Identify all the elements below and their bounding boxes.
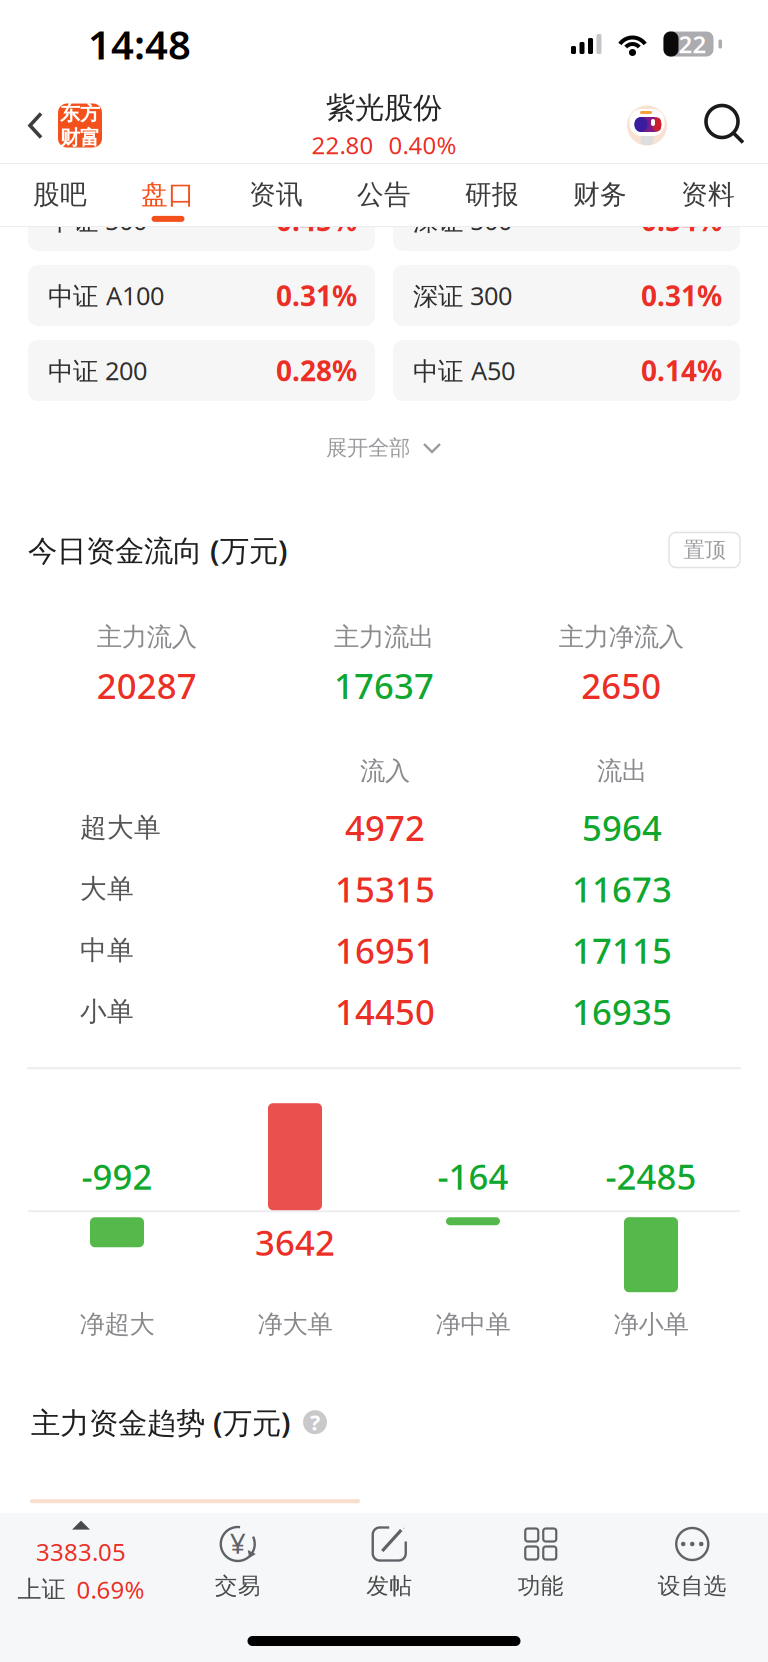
staticText: 小单: [80, 995, 134, 1028]
staticText: 净小单: [613, 1309, 688, 1340]
staticText: 主力净流入: [559, 621, 684, 652]
staticText: 中证 500: [48, 204, 147, 237]
button[interactable]: 搜索: [698, 97, 754, 153]
staticText: 主力流出: [334, 621, 434, 652]
staticText: 15315: [335, 866, 435, 912]
button[interactable]: 设自选: [616, 1513, 768, 1613]
staticText: 资料: [681, 178, 735, 211]
button[interactable]: 中证 500: [28, 190, 375, 251]
staticText: 股吧: [33, 178, 87, 211]
staticText: 展开全部: [326, 435, 410, 461]
staticText: 深证 500: [413, 204, 512, 237]
staticText: 今日资金流向 (万元): [28, 530, 288, 569]
staticText: 东方: [60, 101, 100, 125]
staticText: 财务: [573, 178, 627, 211]
button[interactable]: 资料: [654, 164, 762, 226]
staticText: 净超大: [79, 1309, 154, 1340]
staticText: 17115: [572, 927, 672, 973]
staticText: 0.69%: [76, 1573, 144, 1605]
staticText: 0.14%: [641, 352, 722, 389]
staticText: 流入: [360, 755, 410, 786]
staticText: 设自选: [658, 1572, 727, 1600]
staticText: 0.31%: [641, 277, 722, 314]
staticText: 20287: [97, 662, 197, 708]
staticText: -992: [81, 1153, 152, 1199]
button[interactable]: 中证 200: [28, 340, 375, 401]
staticText: 主力资金趋势 (万元): [31, 1403, 291, 1442]
staticText: 4972: [345, 805, 425, 851]
button[interactable]: 公告: [330, 164, 438, 226]
staticText: 0.28%: [276, 352, 357, 389]
staticText: 大单: [80, 873, 134, 905]
button[interactable]: 深证 500: [393, 190, 740, 251]
staticText: 流出: [597, 755, 647, 786]
staticText: ?: [310, 1408, 320, 1436]
staticText: 公告: [357, 178, 411, 211]
staticText: -164: [437, 1153, 508, 1199]
staticText: 财富: [60, 125, 100, 150]
staticText: 22.80: [311, 129, 373, 161]
button[interactable]: AI 助手: [618, 96, 676, 154]
staticText: 交易: [215, 1572, 261, 1600]
staticText: 3383.05: [36, 1536, 126, 1567]
button[interactable]: ¥: [162, 1513, 313, 1613]
staticText: 14:48: [88, 17, 191, 70]
staticText: 发帖: [366, 1572, 412, 1600]
staticText: 净中单: [435, 1309, 510, 1340]
button[interactable]: 股吧: [6, 164, 114, 226]
staticText: 14450: [335, 988, 435, 1034]
staticText: 资讯: [249, 178, 303, 211]
button[interactable]: 展开全部: [0, 401, 768, 495]
staticText: 上证: [17, 1575, 65, 1604]
button[interactable]: 发帖: [313, 1513, 465, 1613]
staticText: 2650: [581, 662, 661, 708]
staticText: 0.54%: [641, 202, 722, 239]
staticText: 净大单: [257, 1309, 332, 1340]
button[interactable]: 研报: [438, 164, 546, 226]
staticText: 中证 A50: [413, 354, 515, 387]
button[interactable]: 深证 300: [393, 265, 740, 326]
staticText: 3642: [255, 1219, 335, 1265]
staticText: 5964: [582, 805, 662, 851]
staticText: 研报: [465, 178, 519, 211]
button[interactable]: 功能: [465, 1513, 616, 1613]
staticText: 盘口: [141, 178, 195, 211]
staticText: 中证 A100: [48, 279, 164, 312]
staticText: 深证 300: [413, 279, 512, 312]
button[interactable]: 中证 A100: [28, 265, 375, 326]
staticText: -2485: [605, 1153, 696, 1199]
staticText: ¥: [230, 1524, 246, 1562]
staticText: 0.31%: [276, 277, 357, 314]
button[interactable]: 返回: [0, 88, 112, 163]
staticText: 0.40%: [388, 129, 456, 161]
button[interactable]: 中证 A50: [393, 340, 740, 401]
button[interactable]: 盘口: [114, 164, 222, 226]
staticText: 16935: [572, 988, 672, 1034]
staticText: 中单: [80, 934, 134, 967]
staticText: 功能: [518, 1572, 564, 1600]
staticText: 紫光股份: [326, 90, 442, 126]
button[interactable]: 财务: [546, 164, 654, 226]
staticText: 0.45%: [276, 202, 357, 239]
staticText: 中证 200: [48, 354, 147, 387]
staticText: 16951: [335, 927, 435, 973]
button[interactable]: 资讯: [222, 164, 330, 226]
staticText: 22: [678, 28, 706, 60]
staticText: 11673: [572, 866, 672, 912]
staticText: 主力流入: [97, 621, 197, 652]
button[interactable]: 置顶: [669, 532, 740, 567]
staticText: 超大单: [80, 811, 161, 844]
staticText: 17637: [334, 662, 434, 708]
staticText: 置顶: [683, 537, 725, 563]
button[interactable]: 上证指数: [0, 1513, 162, 1613]
